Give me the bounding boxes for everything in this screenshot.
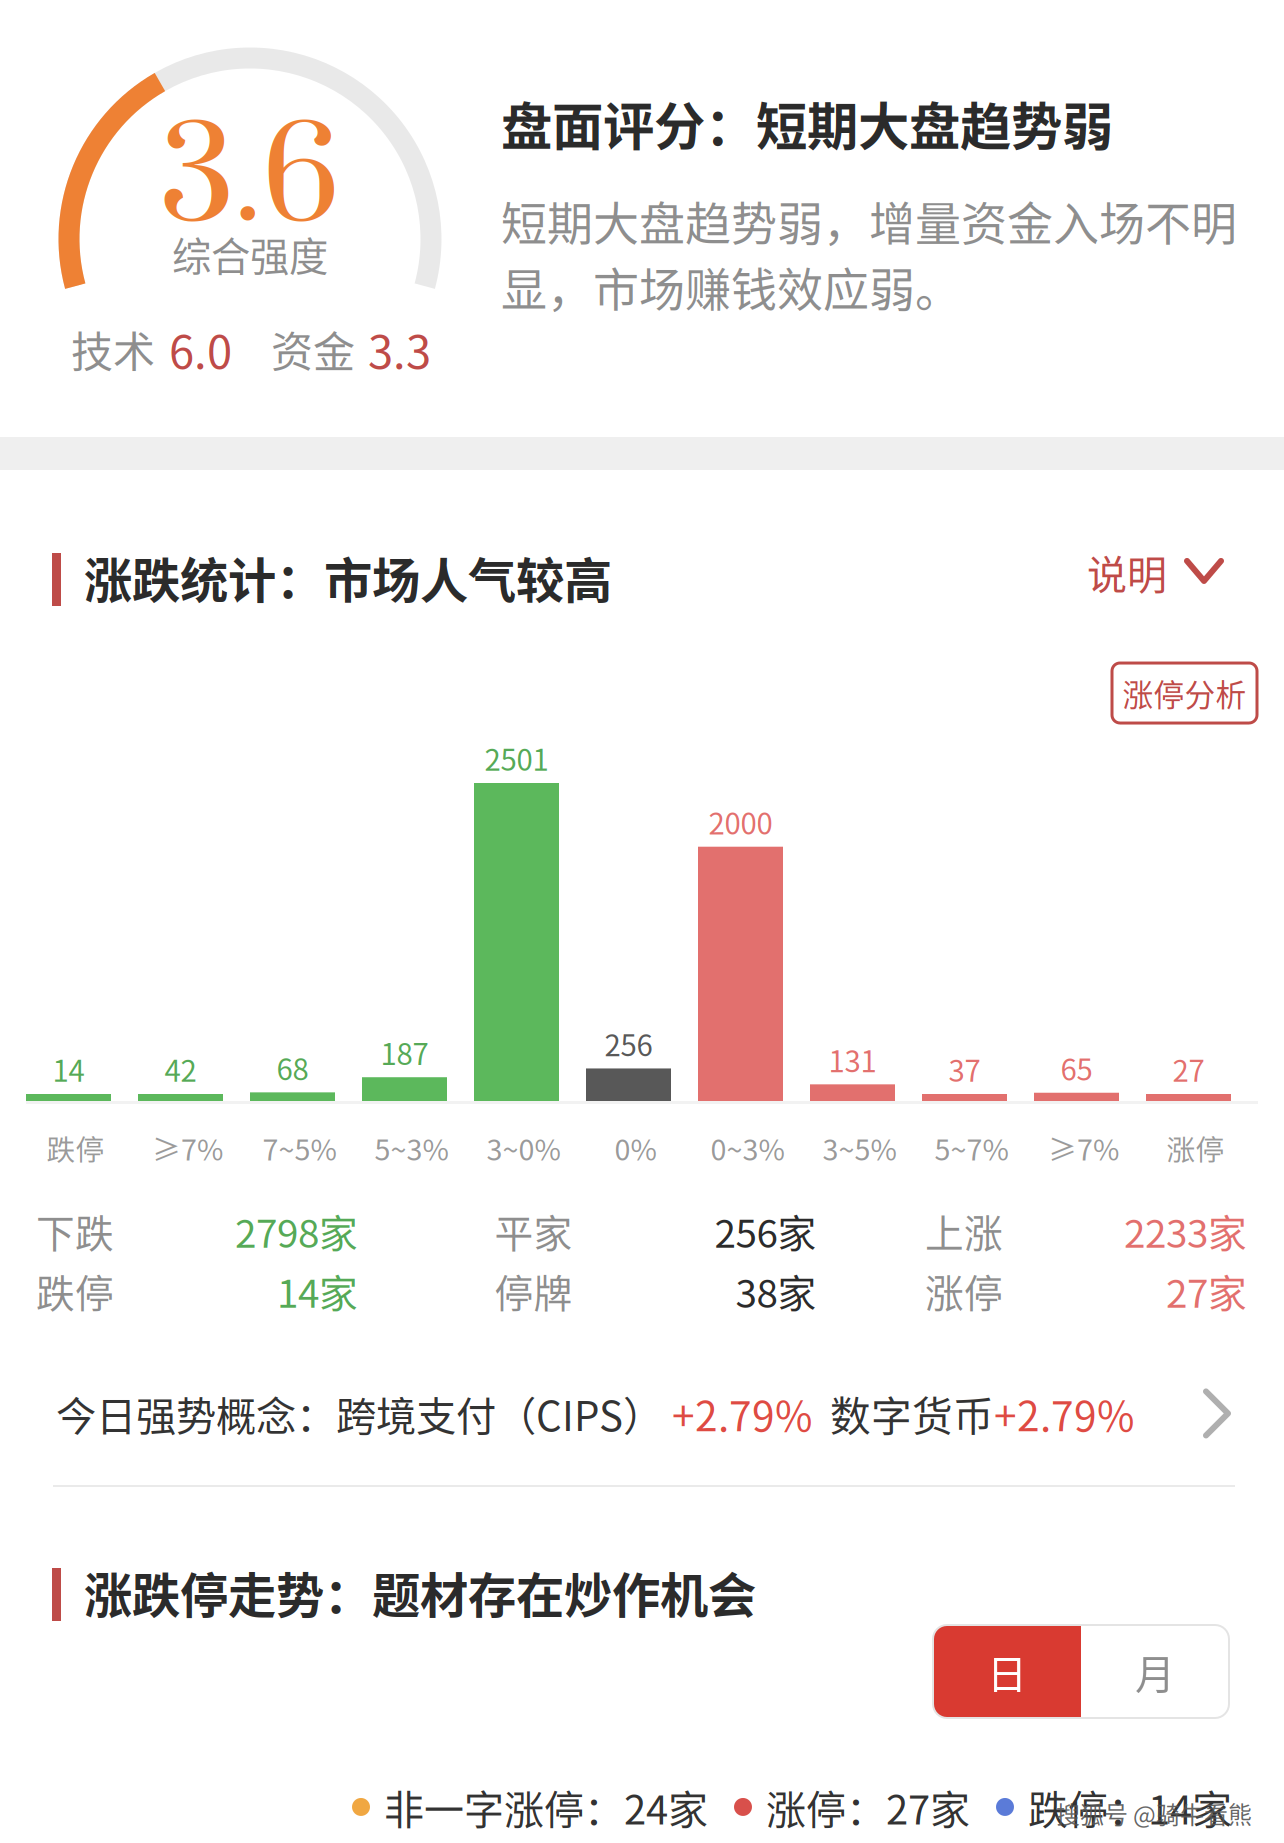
staticText: 0% [614,1127,656,1169]
staticText: 68 [276,1046,308,1089]
staticText: 跌停 [36,1263,114,1319]
staticText: 5~7% [934,1127,1008,1169]
staticText: 131 [828,1038,876,1081]
staticText: 3.6 [159,99,340,263]
staticText: 资金 [271,318,355,379]
staticText: 2000 [708,800,772,843]
staticText: 14家 [277,1263,358,1319]
staticText: 非一字涨停：24家 [384,1778,708,1836]
staticText: 跌停：14家 [1028,1778,1232,1836]
staticText: 上涨 [925,1203,1003,1259]
staticText: 2798家 [235,1203,358,1259]
staticText: 256 [604,1022,652,1065]
staticText: 搜狐号 @骑牛看熊 [1056,1796,1252,1831]
staticText: 盘面评分：短期大盘趋势弱 [501,86,1113,160]
staticText: 平家 [494,1203,572,1259]
staticText: 42 [164,1048,196,1090]
staticText: 今日强势概念：跨境支付（CIPS） [56,1384,663,1443]
staticText: ≥7% [1048,1127,1119,1169]
staticText: 综合强度 [172,225,328,282]
staticText: 显，市场赚钱效应弱。 [501,253,961,320]
staticText: 说明 [1087,543,1167,601]
staticText: 涨停：27家 [766,1778,970,1836]
staticText: 日 [987,1642,1027,1700]
button[interactable]: 今日强势概念：跨境支付（CIPS） [56,1384,1234,1443]
button[interactable]: 月 [1081,1625,1229,1718]
staticText: 27 [1172,1048,1204,1090]
staticText: 涨跌停走势：题材存在炒作机会 [84,1557,756,1627]
staticText: 停牌 [494,1263,572,1319]
staticText: 2233家 [1124,1203,1247,1259]
staticText: ≥7% [152,1127,223,1169]
staticText: 下跌 [36,1203,114,1259]
staticText: 0~3% [710,1127,784,1169]
button[interactable]: 日 [933,1625,1081,1718]
staticText: +2.79% [994,1384,1134,1443]
staticText: 3~5% [822,1127,896,1169]
button[interactable]: 涨停分析 [1112,663,1257,723]
staticText: 3.3 [368,316,431,382]
staticText: 5~3% [374,1127,448,1169]
staticText: 跌停 [46,1127,104,1169]
staticText: 涨停 [925,1263,1003,1319]
staticText: 2501 [484,737,548,779]
staticText: 数字货币 [812,1384,994,1443]
staticText: 27家 [1166,1263,1247,1319]
button[interactable]: 说明 [1087,543,1225,601]
staticText: 技术 [71,318,155,379]
staticText: 月 [1135,1642,1175,1700]
staticText: 187 [380,1031,428,1073]
staticText: 256家 [714,1203,816,1259]
staticText: 短期大盘趋势弱，增量资金入场不明 [501,187,1237,254]
staticText: 3~0% [486,1127,560,1169]
staticText: 38家 [735,1263,816,1319]
staticText: 37 [948,1048,980,1090]
staticText: +2.79% [663,1384,812,1443]
staticText: 涨停分析 [1122,671,1246,715]
staticText: 涨停 [1166,1127,1224,1169]
staticText: 涨跌统计：市场人气较高 [84,542,612,612]
staticText: 7~5% [262,1127,336,1169]
staticText: 14 [52,1048,84,1090]
staticText: 6.0 [169,316,232,382]
staticText: 65 [1060,1046,1092,1089]
